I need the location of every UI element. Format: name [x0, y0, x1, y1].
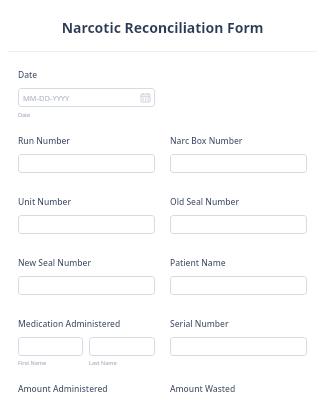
staticText: Narcotic Reconciliation Form — [12, 18, 313, 37]
button[interactable] — [18, 276, 155, 295]
staticText: Last Name — [89, 359, 117, 366]
staticText: Patient Name — [170, 257, 226, 269]
staticText: Amount Administered — [18, 383, 155, 395]
button[interactable] — [170, 215, 307, 234]
staticText: MM-DD-YYYY — [23, 93, 141, 103]
button[interactable]: MM-DD-YYYY — [18, 88, 155, 107]
staticText: First Name — [18, 359, 47, 366]
button[interactable] — [18, 215, 155, 234]
button[interactable] — [89, 337, 155, 356]
staticText: Unit Number — [18, 196, 72, 208]
staticText: Serial Number — [170, 318, 229, 330]
button[interactable] — [170, 276, 307, 295]
button[interactable] — [18, 154, 155, 173]
button[interactable] — [170, 337, 307, 356]
staticText: Medication Administered — [18, 318, 121, 330]
button[interactable] — [18, 337, 83, 356]
staticText: New Seal Number — [18, 257, 92, 269]
staticText: Run Number — [18, 135, 70, 147]
button[interactable] — [170, 154, 307, 173]
staticText: Old Seal Number — [170, 196, 240, 208]
other: Open date picker — [141, 93, 150, 102]
staticText: Amount Wasted — [170, 383, 307, 395]
staticText: Narc Box Number — [170, 135, 243, 147]
staticText: Date — [18, 69, 38, 81]
staticText: Date — [18, 111, 31, 118]
